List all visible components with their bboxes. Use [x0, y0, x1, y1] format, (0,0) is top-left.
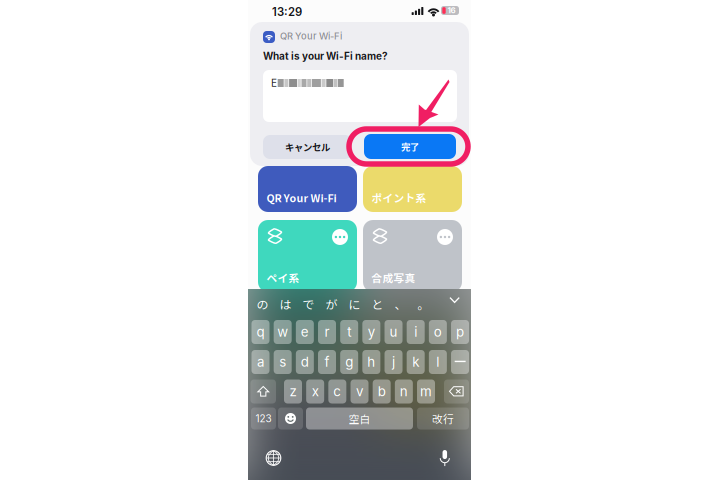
staticText: q — [256, 324, 264, 340]
button[interactable]: k — [407, 350, 425, 374]
button[interactable]: x — [306, 379, 324, 403]
button[interactable]: g — [340, 350, 358, 374]
staticText: c — [333, 383, 341, 399]
staticText: 。 — [417, 295, 429, 313]
staticText: r — [324, 324, 329, 340]
button[interactable] — [278, 407, 303, 429]
staticText: i — [414, 324, 417, 340]
button[interactable]: s — [274, 350, 292, 374]
staticText: の — [256, 295, 268, 313]
staticText: は — [279, 295, 291, 313]
button[interactable]: o — [429, 320, 447, 344]
staticText: z — [289, 383, 296, 399]
button[interactable]: i — [407, 320, 425, 344]
staticText: x — [312, 383, 319, 399]
button[interactable]: で — [296, 292, 320, 316]
staticText: t — [347, 324, 351, 340]
button[interactable]: n — [395, 379, 413, 403]
staticText: p — [456, 324, 464, 340]
staticText: で — [302, 295, 314, 313]
button[interactable]: f — [318, 350, 336, 374]
staticText: w — [277, 324, 288, 340]
button[interactable]: QR Your Wi-Fi — [258, 166, 357, 212]
staticText: 改行 — [432, 411, 454, 426]
staticText: g — [345, 354, 353, 370]
staticText: 16 — [448, 5, 456, 15]
button[interactable]: v — [350, 379, 368, 403]
staticText: 合成写真 — [371, 270, 415, 285]
staticText: a — [257, 354, 264, 370]
button[interactable]: 。 — [411, 292, 435, 316]
staticText: l — [436, 354, 439, 370]
button[interactable]: は — [273, 292, 297, 316]
staticText: キャンセル — [285, 140, 330, 154]
staticText: E — [271, 77, 277, 89]
button[interactable]: 合成写真 — [363, 220, 462, 292]
button[interactable]: w — [274, 320, 292, 344]
staticText: 空白 — [348, 411, 370, 426]
button[interactable]: l — [429, 350, 447, 374]
staticText: ペイ系 — [266, 270, 299, 285]
staticText: h — [367, 354, 375, 370]
staticText: e — [301, 324, 309, 340]
button[interactable]: m — [417, 379, 435, 403]
button[interactable]: ペイ系 — [258, 220, 357, 292]
staticText: m — [420, 383, 432, 399]
staticText: QR Your Wi-Fi — [280, 30, 342, 42]
button[interactable]: c — [328, 379, 346, 403]
button[interactable]: a — [251, 350, 269, 374]
button[interactable]: 完了 — [364, 134, 456, 159]
button[interactable]: の — [250, 292, 274, 316]
button[interactable]: ー — [451, 350, 469, 374]
staticText: 完了 — [401, 140, 419, 153]
staticText: n — [400, 383, 408, 399]
button[interactable]: j — [384, 350, 402, 374]
button[interactable]: b — [373, 379, 391, 403]
staticText: が — [325, 295, 337, 313]
button[interactable]: に — [342, 292, 366, 316]
button[interactable]: t — [340, 320, 358, 344]
staticText: ポイント系 — [371, 190, 426, 205]
button[interactable]: 123 — [251, 407, 276, 429]
button[interactable]: Switch keyboard — [265, 450, 281, 466]
staticText: s — [279, 354, 286, 370]
staticText: 13:29 — [272, 5, 302, 19]
staticText: o — [434, 324, 442, 340]
staticText: 、 — [394, 295, 406, 313]
button[interactable]: r — [318, 320, 336, 344]
staticText: b — [378, 383, 386, 399]
button[interactable]: Dictate — [438, 450, 452, 467]
button[interactable]: q — [251, 320, 269, 344]
button[interactable]: y — [362, 320, 380, 344]
button[interactable] — [250, 379, 276, 403]
button[interactable]: が — [319, 292, 343, 316]
button[interactable]: z — [284, 379, 302, 403]
staticText: 123 — [255, 412, 271, 425]
button[interactable]: 改行 — [417, 407, 469, 429]
button[interactable]: p — [451, 320, 469, 344]
staticText: y — [368, 324, 375, 340]
staticText: ー — [453, 354, 466, 370]
button[interactable]: 、 — [388, 292, 412, 316]
button[interactable]: e — [296, 320, 314, 344]
button[interactable]: u — [384, 320, 402, 344]
button[interactable] — [444, 379, 469, 403]
button[interactable]: d — [296, 350, 314, 374]
button[interactable]: 空白 — [306, 407, 413, 429]
button[interactable]: h — [362, 350, 380, 374]
staticText: u — [389, 324, 397, 340]
staticText: What is your Wi-Fi name? — [263, 50, 388, 62]
staticText: と — [371, 295, 383, 313]
staticText: j — [392, 354, 395, 370]
button[interactable]: と — [365, 292, 389, 316]
staticText: d — [301, 354, 309, 370]
button[interactable]: ポイント系 — [363, 166, 462, 212]
staticText: k — [412, 354, 419, 370]
staticText: QR Your Wi-Fi — [266, 190, 336, 205]
staticText: v — [356, 383, 363, 399]
staticText: に — [348, 295, 360, 313]
button[interactable]: Hide keyboard — [449, 296, 460, 304]
button[interactable]: キャンセル — [263, 135, 352, 159]
staticText: f — [324, 354, 329, 370]
